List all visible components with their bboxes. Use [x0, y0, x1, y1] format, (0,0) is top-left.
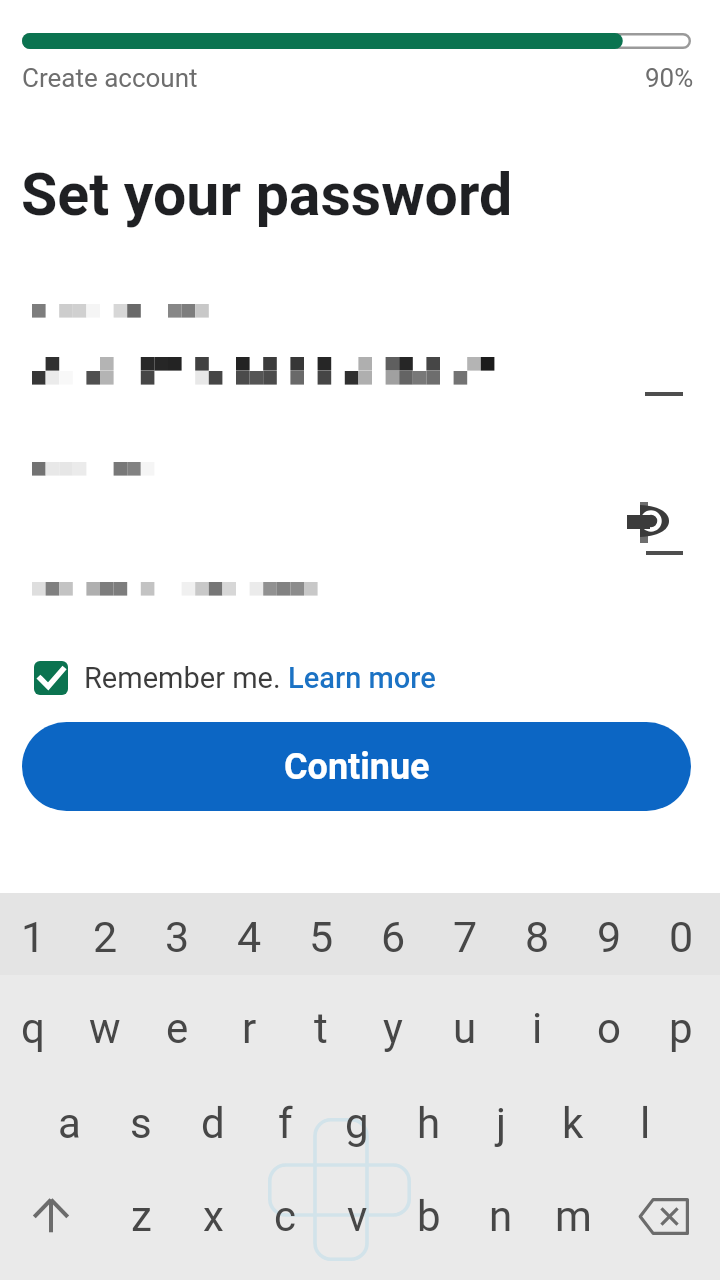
button[interactable]: m	[537, 1166, 609, 1266]
staticText: 5	[309, 912, 334, 962]
staticText: x	[203, 1192, 224, 1241]
staticText: Continue	[284, 746, 430, 788]
button[interactable]: o	[573, 978, 645, 1078]
button[interactable]: e	[141, 978, 213, 1078]
button[interactable]: 1	[0, 896, 69, 978]
staticText: a	[58, 1099, 81, 1148]
button[interactable]: i	[501, 978, 573, 1078]
button[interactable]: v	[321, 1166, 393, 1266]
button[interactable]: t	[285, 978, 357, 1078]
button[interactable]: z	[105, 1166, 177, 1266]
button[interactable]: u	[429, 978, 501, 1078]
staticText: g	[345, 1099, 369, 1148]
button[interactable]: s	[105, 1073, 177, 1173]
staticText: s	[130, 1099, 152, 1148]
button[interactable]: d	[177, 1073, 249, 1173]
button[interactable]: c	[249, 1166, 321, 1266]
button[interactable]: Continue	[22, 722, 691, 811]
staticText: b	[417, 1192, 441, 1241]
button[interactable]: x	[177, 1166, 249, 1266]
staticText: n	[489, 1192, 513, 1241]
button[interactable]: Shift	[0, 1166, 105, 1266]
button[interactable]: 5	[285, 896, 357, 978]
button[interactable]: p	[645, 978, 717, 1078]
staticText: Set your password	[21, 160, 513, 229]
staticText: t	[314, 1004, 328, 1053]
button[interactable]: f	[249, 1073, 321, 1173]
button[interactable]: n	[465, 1166, 537, 1266]
staticText: 7	[453, 912, 478, 962]
staticText: Create account	[22, 63, 198, 93]
button[interactable]: Show password	[612, 487, 682, 557]
button[interactable]: Backspace	[609, 1166, 717, 1266]
staticText: w	[89, 1004, 121, 1053]
button[interactable]: 7	[429, 896, 501, 978]
staticText: r	[242, 1004, 257, 1053]
staticText: l	[640, 1099, 651, 1148]
button[interactable]: Remember me.	[34, 653, 436, 703]
staticText: y	[383, 1004, 403, 1053]
button[interactable]: k	[537, 1073, 609, 1173]
button[interactable]: Learn more	[288, 661, 436, 695]
staticText: 90%	[645, 63, 694, 93]
button[interactable]: r	[213, 978, 285, 1078]
button[interactable]: q	[0, 978, 69, 1078]
staticText: v	[347, 1192, 368, 1241]
staticText: 1	[21, 912, 46, 962]
button[interactable]: h	[393, 1073, 465, 1173]
button[interactable]: 6	[357, 896, 429, 978]
staticText: z	[131, 1192, 152, 1241]
staticText: p	[669, 1004, 693, 1053]
staticText: 4	[237, 912, 262, 962]
button[interactable]: 9	[573, 896, 645, 978]
staticText: 6	[381, 912, 406, 962]
staticText: o	[597, 1004, 621, 1053]
button[interactable]: l	[609, 1073, 681, 1173]
staticText: 3	[165, 912, 190, 962]
button[interactable]: a	[33, 1073, 105, 1173]
staticText: q	[21, 1004, 45, 1053]
staticText: 8	[525, 912, 550, 962]
button[interactable]: 3	[141, 896, 213, 978]
button[interactable]: g	[321, 1073, 393, 1173]
staticText: e	[166, 1004, 189, 1053]
staticText: c	[274, 1192, 296, 1241]
staticText: 0	[669, 912, 694, 962]
button[interactable]: b	[393, 1166, 465, 1266]
staticText: f	[278, 1099, 293, 1148]
staticText: 9	[597, 912, 622, 962]
button[interactable]: 2	[69, 896, 141, 978]
staticText: k	[562, 1099, 584, 1148]
button[interactable]: w	[69, 978, 141, 1078]
staticText: j	[496, 1099, 507, 1148]
button[interactable]: 0	[645, 896, 717, 978]
staticText: h	[417, 1099, 441, 1148]
button[interactable]: 8	[501, 896, 573, 978]
staticText: m	[555, 1192, 592, 1241]
button[interactable]: 4	[213, 896, 285, 978]
staticText: d	[201, 1099, 225, 1148]
button[interactable]: y	[357, 978, 429, 1078]
staticText: u	[453, 1004, 477, 1053]
button[interactable]: j	[465, 1073, 537, 1173]
staticText: Remember me.	[84, 661, 288, 695]
staticText: i	[532, 1004, 543, 1053]
staticText: 2	[93, 912, 118, 962]
